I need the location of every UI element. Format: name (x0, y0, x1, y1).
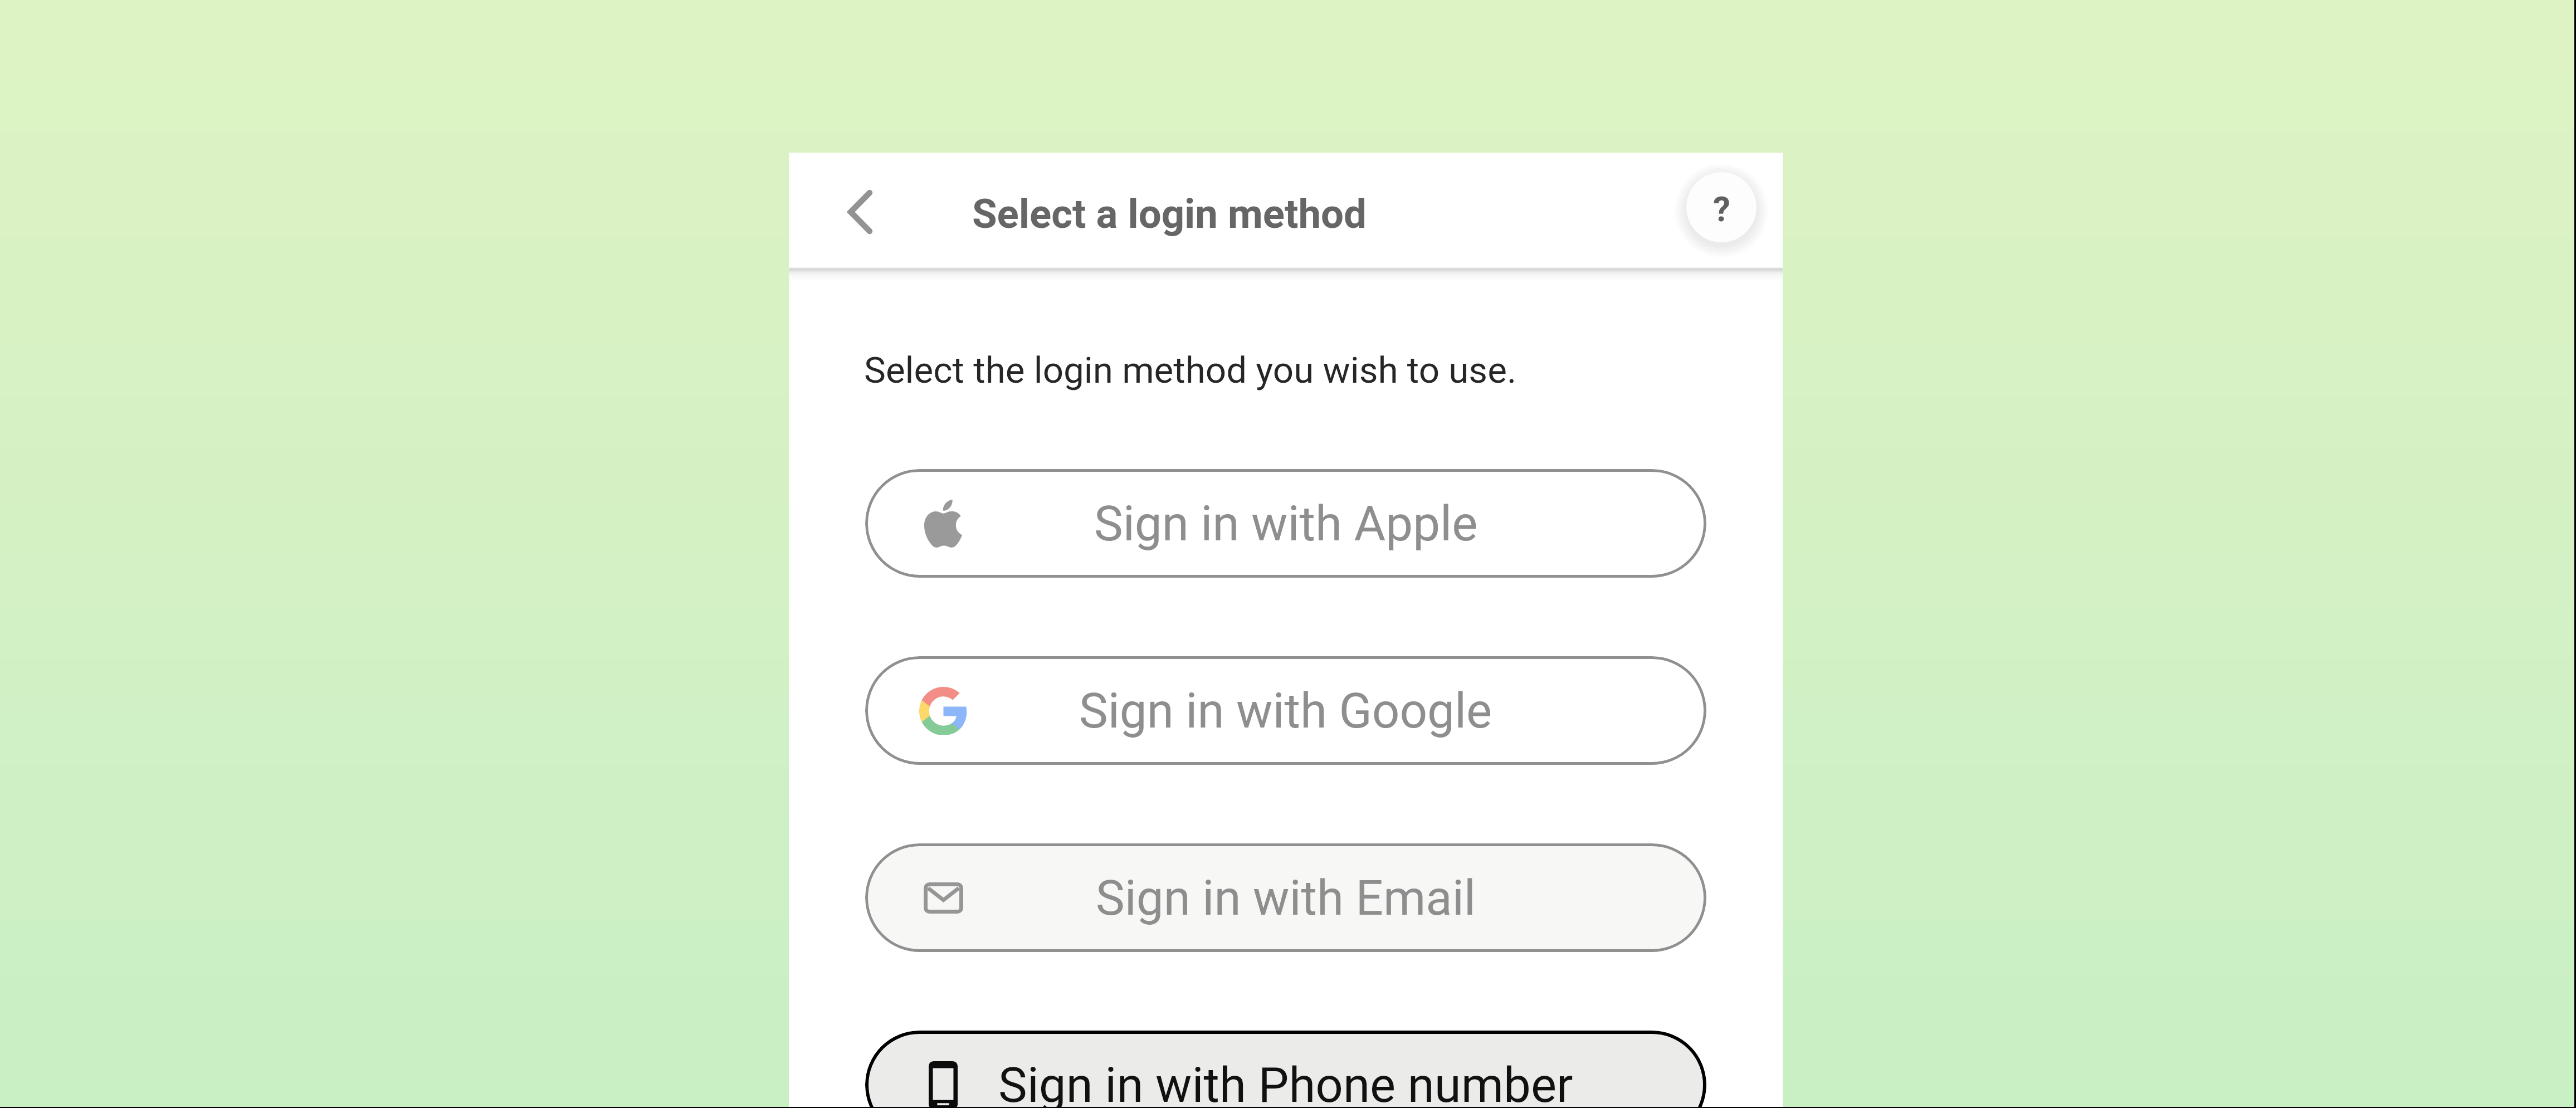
staticText: Sign in with Google (1079, 682, 1492, 739)
staticText: Sign in with Apple (1094, 495, 1478, 552)
button[interactable]: Sign in with Google (865, 656, 1706, 765)
staticText: Select a login method (972, 191, 1367, 238)
staticText: Sign in with Phone number (998, 1057, 1573, 1107)
button[interactable]: Sign in with Apple (865, 469, 1706, 578)
button[interactable]: Sign in with Phone number (865, 1031, 1706, 1107)
button[interactable]: Help (1675, 161, 1768, 253)
button[interactable]: Back (830, 181, 891, 242)
staticText: Select the login method you wish to use. (864, 349, 1517, 392)
button[interactable]: Sign in with Email (865, 843, 1706, 952)
staticText: ? (1713, 189, 1730, 230)
staticText: Sign in with Email (1096, 870, 1476, 926)
